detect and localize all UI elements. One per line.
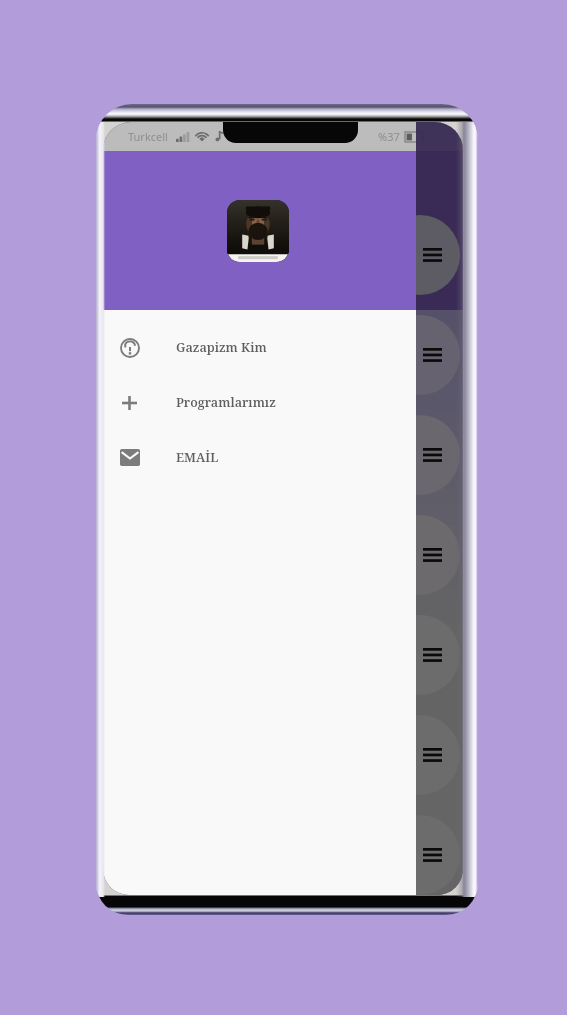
button[interactable]	[103, 805, 463, 895]
staticText: Programlarımız	[176, 394, 276, 411]
button[interactable]	[103, 305, 463, 405]
button[interactable]: EMAİL	[103, 430, 416, 485]
button[interactable]	[103, 605, 463, 705]
staticText: Gazapizm Kim	[176, 339, 267, 356]
button[interactable]: Programlarımız	[103, 375, 416, 430]
staticText: 18:31	[432, 129, 461, 144]
button[interactable]: Gazapizm Kim	[103, 320, 416, 375]
staticText: EMAİL	[176, 449, 219, 466]
button[interactable]	[103, 705, 463, 805]
button[interactable]: Profile photo	[227, 200, 289, 262]
staticText: Turkcell	[128, 129, 168, 144]
button[interactable]	[103, 505, 463, 605]
button[interactable]	[103, 405, 463, 505]
staticText: %37	[378, 129, 400, 144]
button[interactable]	[103, 205, 463, 305]
